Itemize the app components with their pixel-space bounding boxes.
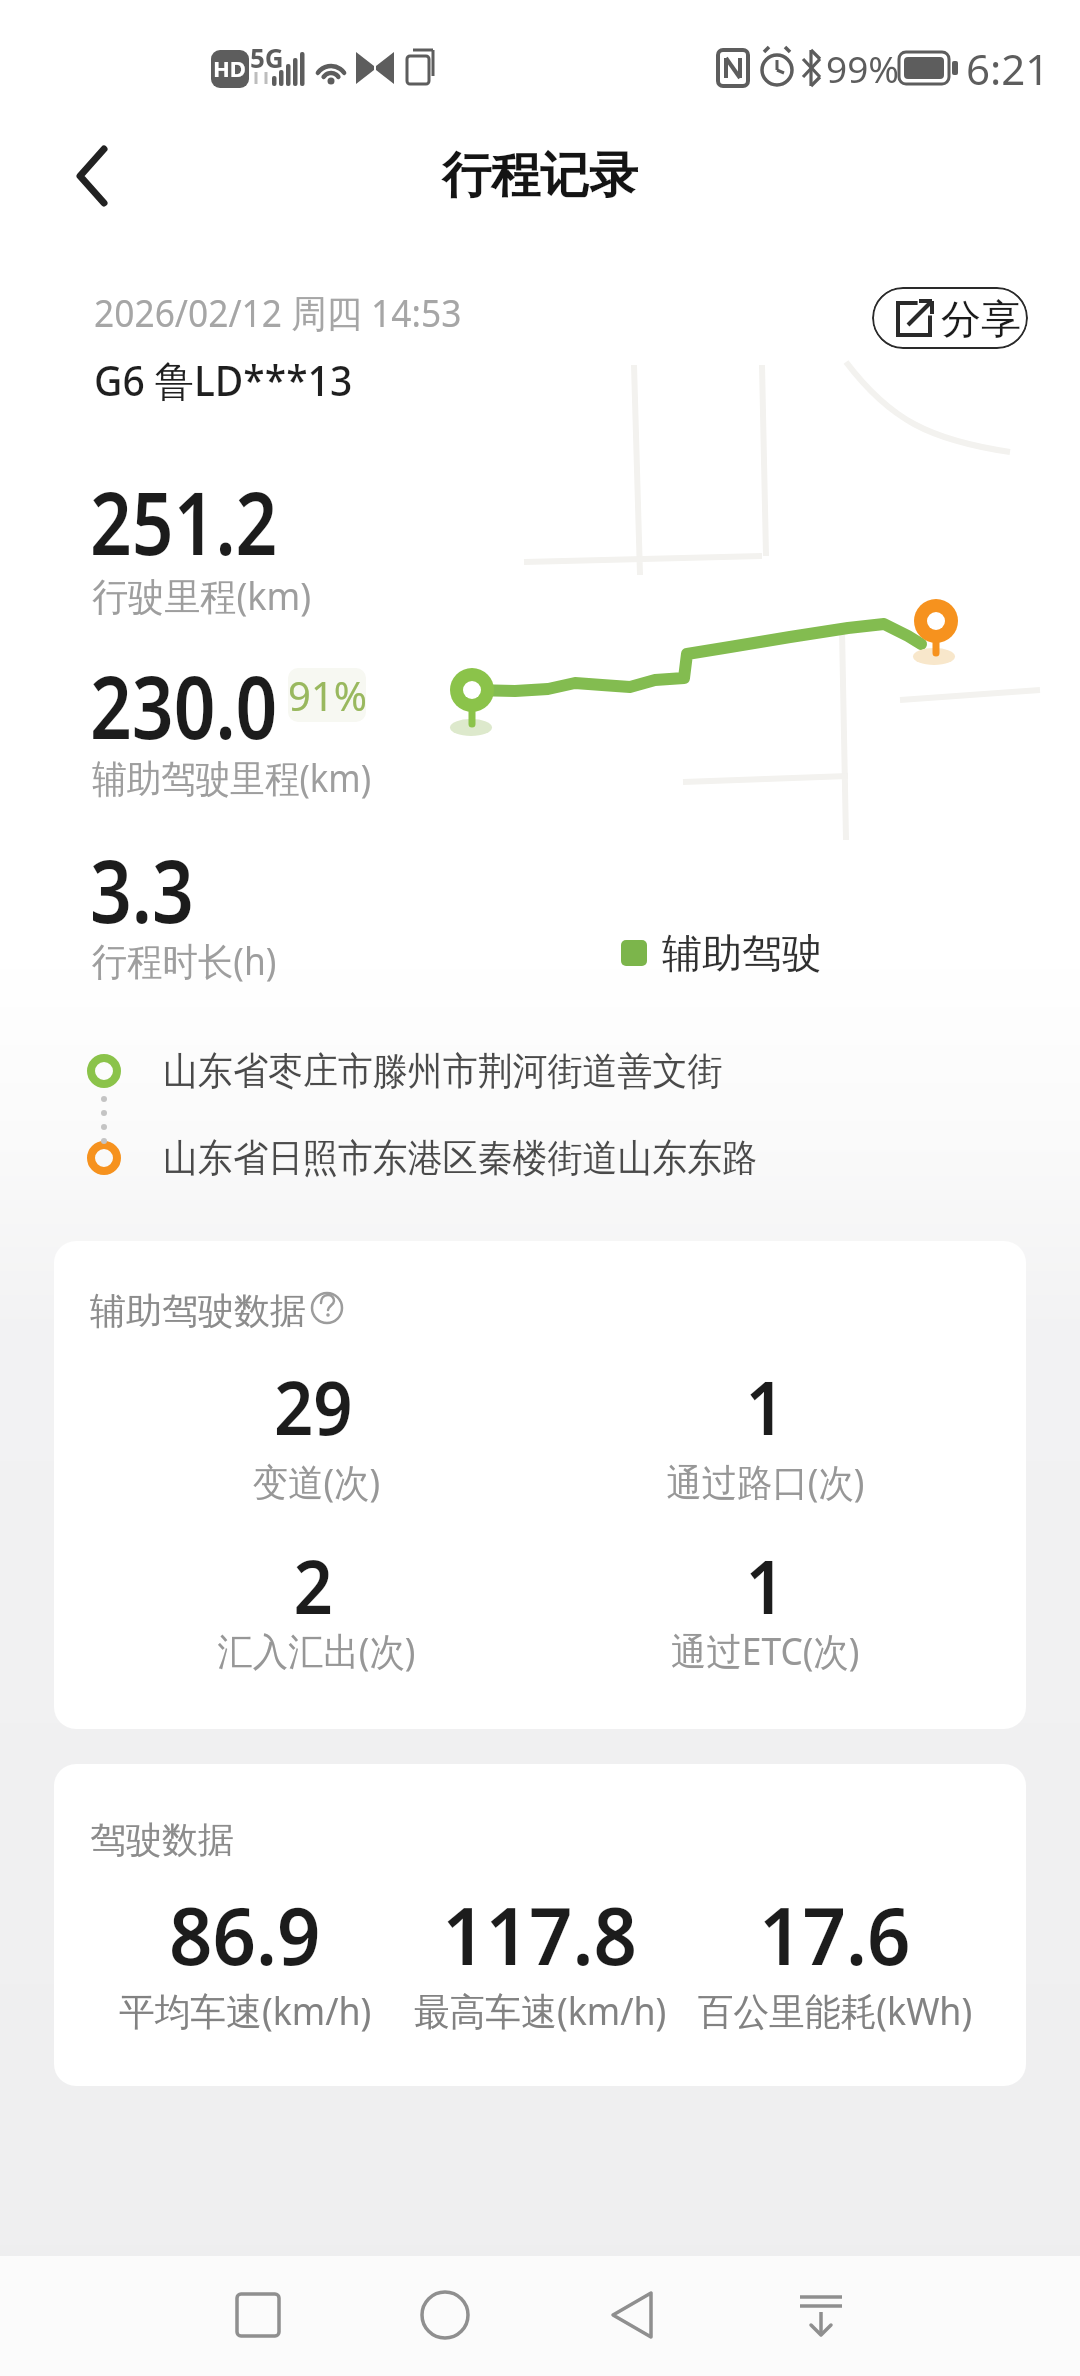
staticText: 29 [274, 1356, 353, 1457]
staticText: 行程时长(h) [92, 934, 277, 986]
staticText: 百公里能耗(kWh) [698, 1984, 972, 2036]
button[interactable] [602, 2285, 662, 2345]
staticText: G6 鲁LD***13 [94, 351, 352, 408]
staticText: 辅助驾驶数据 [90, 1288, 306, 1333]
staticText: 2026/02/12 周四 14:53 [94, 286, 462, 338]
staticText: 1 [745, 1356, 785, 1457]
staticText: 17.6 [759, 1879, 911, 1988]
staticText: 变道(次) [253, 1455, 380, 1507]
staticText: 86.9 [169, 1879, 321, 1988]
staticText: 230.0 [90, 647, 278, 764]
staticText: 行驶里程(km) [92, 569, 311, 621]
staticText: 117.8 [442, 1879, 638, 1988]
staticText: 平均车速(km/h) [119, 1984, 372, 2036]
staticText: 91% [288, 668, 367, 722]
staticText: 5G [250, 40, 284, 75]
staticText: 251.2 [90, 463, 278, 580]
staticText: 6:21 [966, 40, 1050, 97]
staticText: 山东省枣庄市滕州市荆河街道善文街 [163, 1047, 722, 1095]
staticText: HD [213, 53, 246, 83]
button[interactable] [415, 2285, 475, 2345]
staticText: 3.3 [90, 831, 195, 948]
staticText: 2 [293, 1535, 333, 1636]
button[interactable] [228, 2285, 288, 2345]
staticText: 通过ETC(次) [671, 1624, 860, 1676]
button[interactable] [60, 140, 130, 212]
button[interactable] [872, 287, 1028, 349]
staticText: 1 [745, 1535, 785, 1636]
button[interactable] [790, 2285, 850, 2345]
staticText: 驾驶数据 [90, 1817, 234, 1862]
staticText: 山东省日照市东港区秦楼街道山东东路 [163, 1134, 757, 1182]
staticText: 辅助驾驶 [662, 928, 822, 978]
staticText: 汇入汇出(次) [217, 1624, 416, 1676]
staticText: 通过路口(次) [666, 1455, 865, 1507]
staticText: 99% [826, 43, 900, 93]
staticText: 辅助驾驶里程(km) [92, 751, 371, 803]
staticText: 分享 [941, 294, 1021, 344]
staticText: 最高车速(km/h) [414, 1984, 667, 2036]
staticText: 行程记录 [442, 145, 638, 207]
